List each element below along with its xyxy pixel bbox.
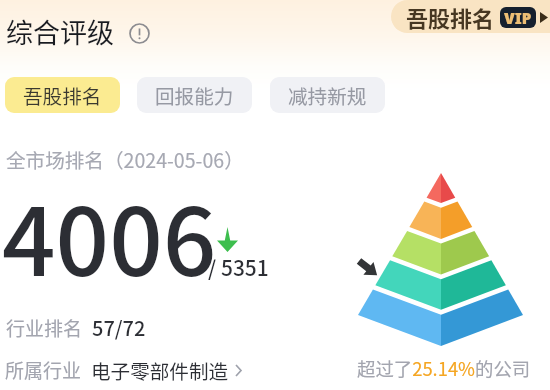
staticText: 吾股排名 [23,81,102,109]
staticText: 综合评级 [6,12,114,51]
staticText: 回报能力 [155,81,234,109]
button[interactable]: 回报能力 [137,77,252,113]
staticText: 吾股排名 [406,1,495,33]
staticText: VIP [504,7,532,28]
button[interactable]: 吾股排名 [5,77,120,113]
button[interactable]: 所属行业 [5,356,242,384]
button[interactable]: 吾股排名 [391,0,550,33]
staticText: 减持新规 [288,81,367,109]
staticText: 4006 [2,167,217,303]
staticText: 全市场排名（2024-05-06） [6,145,244,173]
staticText: 57/72 [92,313,146,342]
staticText: 行业排名 [6,314,83,342]
staticText: 电子零部件制造 [91,356,229,384]
staticText: 超过了25.14%的公司 [357,355,531,382]
button[interactable]: 减持新规 [270,77,385,113]
button[interactable]: 评级说明 [126,20,152,46]
staticText: 所属行业 [5,356,82,384]
staticText: / 5351 [208,252,269,282]
